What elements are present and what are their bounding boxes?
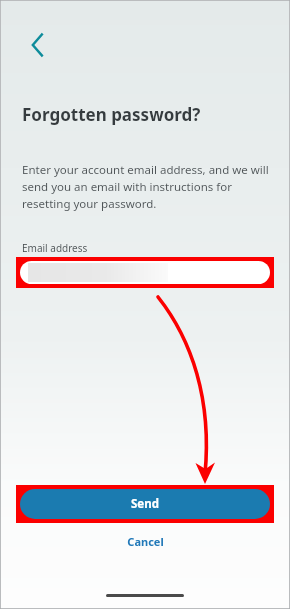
staticText: Cancel [127, 534, 164, 549]
staticText: Forgotten password? [22, 103, 201, 126]
button[interactable]: Cancel [113, 531, 178, 552]
staticText: Email address [22, 241, 88, 255]
button[interactable]: Back [18, 25, 58, 65]
button[interactable]: Send [20, 489, 270, 519]
staticText: Send [131, 496, 159, 512]
staticText: Enter your account email address, and we… [22, 162, 270, 211]
button[interactable] [20, 261, 270, 284]
